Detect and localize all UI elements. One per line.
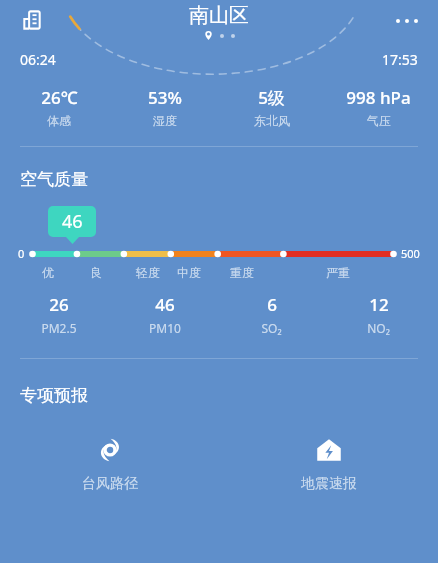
- staticText: 26℃: [41, 86, 78, 109]
- button[interactable]: 12: [325, 293, 432, 336]
- staticText: 500: [401, 246, 420, 261]
- staticText: 气压: [367, 113, 391, 128]
- staticText: SO₂: [261, 320, 282, 336]
- staticText: 46: [62, 209, 83, 234]
- staticText: 湿度: [153, 113, 177, 128]
- button[interactable]: 台风路径: [0, 436, 219, 493]
- staticText: 17:53: [382, 50, 418, 69]
- button[interactable]: 46: [112, 293, 218, 336]
- staticText: PM10: [149, 320, 181, 336]
- button[interactable]: 地震速报: [219, 436, 438, 493]
- button[interactable]: 5级: [218, 86, 325, 128]
- staticText: 26: [49, 293, 69, 316]
- staticText: 地震速报: [301, 475, 357, 493]
- staticText: 998 hPa: [346, 86, 411, 109]
- staticText: 优: [42, 265, 54, 280]
- button[interactable]: 26℃: [6, 86, 112, 128]
- staticText: 53%: [148, 86, 182, 109]
- button[interactable]: 专项预报: [20, 385, 88, 406]
- button[interactable]: 6: [218, 293, 325, 336]
- staticText: NO₂: [367, 320, 390, 336]
- button[interactable]: 空气质量: [20, 169, 88, 190]
- staticText: PM2.5: [41, 320, 77, 336]
- staticText: 6: [267, 293, 277, 316]
- staticText: 体感: [47, 113, 71, 128]
- staticText: 中度: [177, 265, 201, 280]
- staticText: 轻度: [136, 265, 160, 280]
- staticText: 5级: [258, 86, 285, 109]
- staticText: 46: [155, 293, 175, 316]
- staticText: 严重: [326, 265, 350, 280]
- staticText: 台风路径: [82, 475, 138, 493]
- staticText: 南山区: [189, 3, 249, 28]
- button[interactable]: More options: [388, 8, 426, 34]
- button[interactable]: 26: [6, 293, 112, 336]
- button[interactable]: City list: [14, 2, 50, 38]
- staticText: 东北风: [254, 113, 290, 128]
- button[interactable]: 53%: [112, 86, 218, 128]
- staticText: 重度: [230, 265, 254, 280]
- button[interactable]: 998 hPa: [325, 86, 432, 128]
- staticText: 12: [369, 293, 389, 316]
- staticText: 0: [18, 246, 25, 261]
- staticText: 06:24: [20, 50, 56, 69]
- staticText: 良: [90, 265, 102, 280]
